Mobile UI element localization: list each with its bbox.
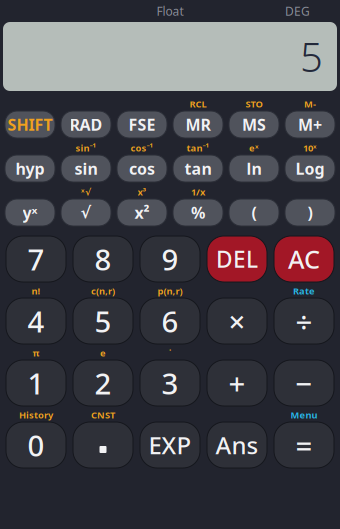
staticText: % <box>191 202 205 223</box>
staticText: FSE <box>128 114 155 135</box>
staticText: RAD <box>69 114 102 135</box>
staticText: π <box>32 347 39 359</box>
staticText: 1/x <box>191 186 205 198</box>
button[interactable]: ln <box>229 155 279 182</box>
staticText: cos <box>129 158 155 179</box>
staticText: ÷ <box>295 301 312 340</box>
staticText: ) <box>307 202 312 223</box>
staticText: sin⁻¹ <box>75 142 96 154</box>
button[interactable]: 8 <box>73 236 133 282</box>
button[interactable]: = <box>274 422 334 468</box>
button[interactable]: MR <box>173 111 223 138</box>
staticText: 2 <box>94 363 111 402</box>
button[interactable]: 5 <box>73 298 133 344</box>
button[interactable]: ÷ <box>274 298 334 344</box>
staticText: tan <box>184 158 211 179</box>
button[interactable]: hyp <box>5 155 55 182</box>
staticText: MR <box>185 114 210 135</box>
staticText: sin <box>74 158 97 179</box>
button[interactable]: sin <box>61 155 111 182</box>
staticText: SHIFT <box>7 114 52 135</box>
button[interactable]: x² <box>117 199 167 226</box>
staticText: M- <box>304 98 316 110</box>
button[interactable] <box>73 422 133 468</box>
button[interactable]: FSE <box>117 111 167 138</box>
staticText: Log <box>295 158 324 179</box>
button[interactable]: EXP <box>140 422 200 468</box>
staticText: + <box>228 363 245 402</box>
staticText: − <box>295 363 312 402</box>
button[interactable]: RAD <box>61 111 111 138</box>
button[interactable]: Ans <box>207 422 267 468</box>
staticText: ln <box>246 158 261 179</box>
staticText: p(n,r) <box>157 285 182 297</box>
button[interactable]: − <box>274 360 334 406</box>
staticText: 7 <box>27 239 44 278</box>
staticText: c(n,r) <box>91 285 115 297</box>
staticText: 10ˣ <box>303 142 317 154</box>
staticText: AC <box>288 242 320 276</box>
staticText: Float <box>156 3 183 19</box>
button[interactable]: 2 <box>73 360 133 406</box>
staticText: tan⁻¹ <box>186 142 209 154</box>
button[interactable]: MS <box>229 111 279 138</box>
staticText: ˙ <box>169 347 171 359</box>
staticText: 6 <box>161 301 178 340</box>
staticText: Ans <box>215 429 258 461</box>
staticText: 5 <box>300 30 323 83</box>
staticText: eˣ <box>249 142 259 154</box>
staticText: × <box>228 301 245 340</box>
staticText: Menu <box>290 409 317 421</box>
staticText: n! <box>31 285 40 297</box>
staticText: yˣ <box>22 202 37 223</box>
staticText: RCL <box>189 98 206 110</box>
button[interactable]: ) <box>285 199 335 226</box>
staticText: x² <box>134 202 149 223</box>
staticText: DEL <box>216 244 258 274</box>
button[interactable]: 1 <box>6 360 66 406</box>
button[interactable]: tan <box>173 155 223 182</box>
staticText: x³ <box>137 186 146 198</box>
button[interactable]: Log <box>285 155 335 182</box>
button[interactable]: 9 <box>140 236 200 282</box>
button[interactable]: 3 <box>140 360 200 406</box>
button[interactable]: 0 <box>6 422 66 468</box>
button[interactable]: 4 <box>6 298 66 344</box>
staticText: 9 <box>161 239 178 278</box>
staticText: e <box>100 347 106 359</box>
staticText: DEG <box>285 3 310 19</box>
button[interactable]: + <box>207 360 267 406</box>
button[interactable]: ( <box>229 199 279 226</box>
button[interactable]: cos <box>117 155 167 182</box>
staticText: ( <box>251 202 256 223</box>
button[interactable]: × <box>207 298 267 344</box>
staticText: 3 <box>161 363 178 402</box>
button[interactable]: 6 <box>140 298 200 344</box>
staticText: 4 <box>27 301 44 340</box>
staticText: cos⁻¹ <box>130 142 153 154</box>
button[interactable]: √ <box>61 199 111 226</box>
button[interactable]: DEL <box>207 236 267 282</box>
staticText: MS <box>242 114 266 135</box>
button[interactable]: AC <box>274 236 334 282</box>
staticText: 5 <box>94 301 111 340</box>
button[interactable]: M+ <box>285 111 335 138</box>
button[interactable]: % <box>173 199 223 226</box>
staticText: 8 <box>94 239 111 278</box>
staticText: = <box>295 425 312 464</box>
button[interactable]: SHIFT <box>5 111 55 138</box>
staticText: M+ <box>298 114 322 135</box>
staticText: STO <box>245 98 262 110</box>
button[interactable]: 7 <box>6 236 66 282</box>
staticText: 1 <box>27 363 44 402</box>
staticText: 0 <box>27 425 44 464</box>
staticText: History <box>19 409 53 421</box>
staticText: EXP <box>148 429 191 461</box>
staticText: hyp <box>15 158 44 179</box>
staticText: Rate <box>293 285 315 297</box>
staticText: CNST <box>91 409 115 421</box>
staticText: ˣ√ <box>81 186 91 198</box>
button[interactable]: yˣ <box>5 199 55 226</box>
staticText: √ <box>80 203 91 222</box>
